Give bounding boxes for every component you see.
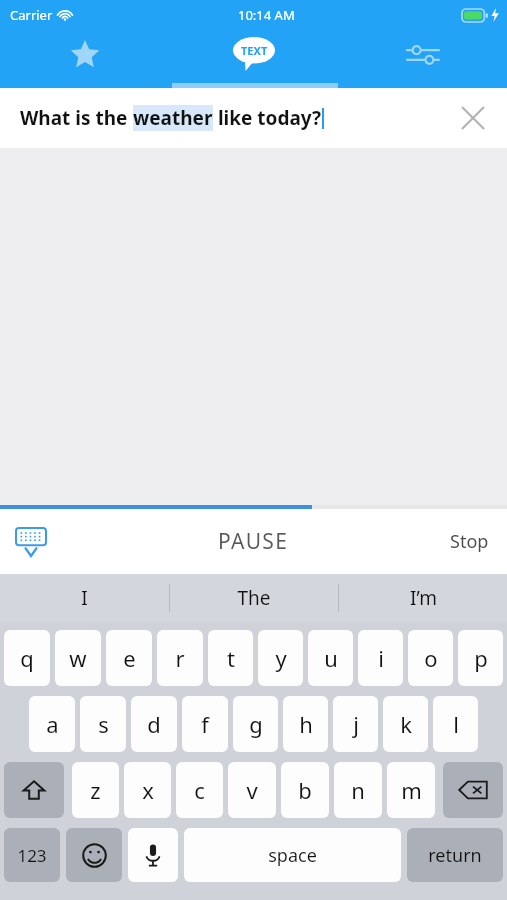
staticText: I xyxy=(81,585,88,611)
staticText: space xyxy=(268,843,317,868)
staticText: Stop xyxy=(450,529,489,554)
staticText: s xyxy=(98,709,109,739)
button[interactable]: Hide keyboard xyxy=(8,519,54,565)
button[interactable]: r xyxy=(157,630,203,686)
staticText: k xyxy=(400,709,412,739)
button[interactable]: f xyxy=(182,696,228,752)
staticText: d xyxy=(147,709,161,739)
staticText: h xyxy=(299,709,313,739)
button[interactable]: I’m xyxy=(339,574,507,622)
button[interactable]: Dictation xyxy=(128,828,178,882)
staticText: 123 xyxy=(17,844,47,867)
button[interactable]: Backspace xyxy=(443,762,503,818)
staticText: What is the xyxy=(20,105,133,131)
button[interactable]: I xyxy=(0,574,169,622)
button[interactable]: Emoji xyxy=(66,828,122,882)
staticText: PAUSE xyxy=(218,527,289,556)
staticText: r xyxy=(175,643,185,673)
button[interactable]: e xyxy=(106,630,152,686)
staticText: I’m xyxy=(410,585,437,611)
button[interactable]: j xyxy=(333,696,378,752)
button[interactable]: x xyxy=(124,762,171,818)
staticText: q xyxy=(20,643,34,673)
staticText: m xyxy=(401,775,422,805)
button[interactable]: The xyxy=(170,574,338,622)
button[interactable]: d xyxy=(131,696,177,752)
button[interactable]: m xyxy=(387,762,435,818)
staticText: TEXT xyxy=(241,43,268,58)
staticText: b xyxy=(298,775,312,805)
staticText: The xyxy=(237,585,271,611)
staticText: v xyxy=(246,775,258,805)
staticText: x xyxy=(142,775,154,805)
staticText: z xyxy=(90,775,101,805)
button[interactable]: w xyxy=(55,630,101,686)
button[interactable]: h xyxy=(283,696,328,752)
button[interactable]: c xyxy=(176,762,223,818)
button[interactable]: o xyxy=(408,630,453,686)
staticText: l xyxy=(453,709,459,739)
button[interactable]: z xyxy=(72,762,119,818)
staticText: c xyxy=(194,775,205,805)
staticText: return xyxy=(428,843,482,868)
staticText: w xyxy=(69,643,87,673)
button[interactable]: p xyxy=(458,630,503,686)
button[interactable]: return xyxy=(407,828,503,882)
staticText: y xyxy=(275,643,287,673)
button[interactable]: n xyxy=(334,762,382,818)
staticText: t xyxy=(227,643,235,673)
button[interactable]: Text xyxy=(169,30,338,88)
button[interactable]: v xyxy=(228,762,276,818)
button[interactable]: Clear text xyxy=(455,100,491,136)
button[interactable]: i xyxy=(358,630,403,686)
staticText: p xyxy=(474,643,488,673)
button[interactable]: b xyxy=(281,762,329,818)
staticText: Carrier xyxy=(10,6,53,24)
staticText: weather xyxy=(133,105,213,131)
staticText: j xyxy=(353,709,359,739)
button[interactable]: s xyxy=(80,696,126,752)
staticText: g xyxy=(249,709,263,739)
button[interactable]: space xyxy=(184,828,401,882)
staticText: o xyxy=(424,643,438,673)
staticText: f xyxy=(201,709,209,739)
button[interactable]: k xyxy=(383,696,428,752)
button[interactable]: u xyxy=(308,630,353,686)
staticText: n xyxy=(351,775,365,805)
button[interactable]: y xyxy=(258,630,303,686)
button[interactable]: l xyxy=(433,696,478,752)
button[interactable]: a xyxy=(29,696,75,752)
button[interactable]: q xyxy=(4,630,50,686)
staticText: u xyxy=(324,643,338,673)
button[interactable]: Favorites xyxy=(0,30,169,88)
button[interactable]: Shift xyxy=(4,762,64,818)
staticText: e xyxy=(123,643,136,673)
button[interactable]: PAUSE xyxy=(196,517,311,566)
button[interactable]: t xyxy=(208,630,253,686)
staticText: 10:14 AM xyxy=(238,6,295,24)
staticText: i xyxy=(378,643,384,673)
staticText: like today? xyxy=(213,105,322,131)
button[interactable]: Settings xyxy=(338,30,507,88)
button[interactable]: 123 xyxy=(4,828,60,882)
staticText: a xyxy=(46,709,59,739)
button[interactable]: Stop xyxy=(432,517,507,566)
button[interactable]: g xyxy=(233,696,278,752)
